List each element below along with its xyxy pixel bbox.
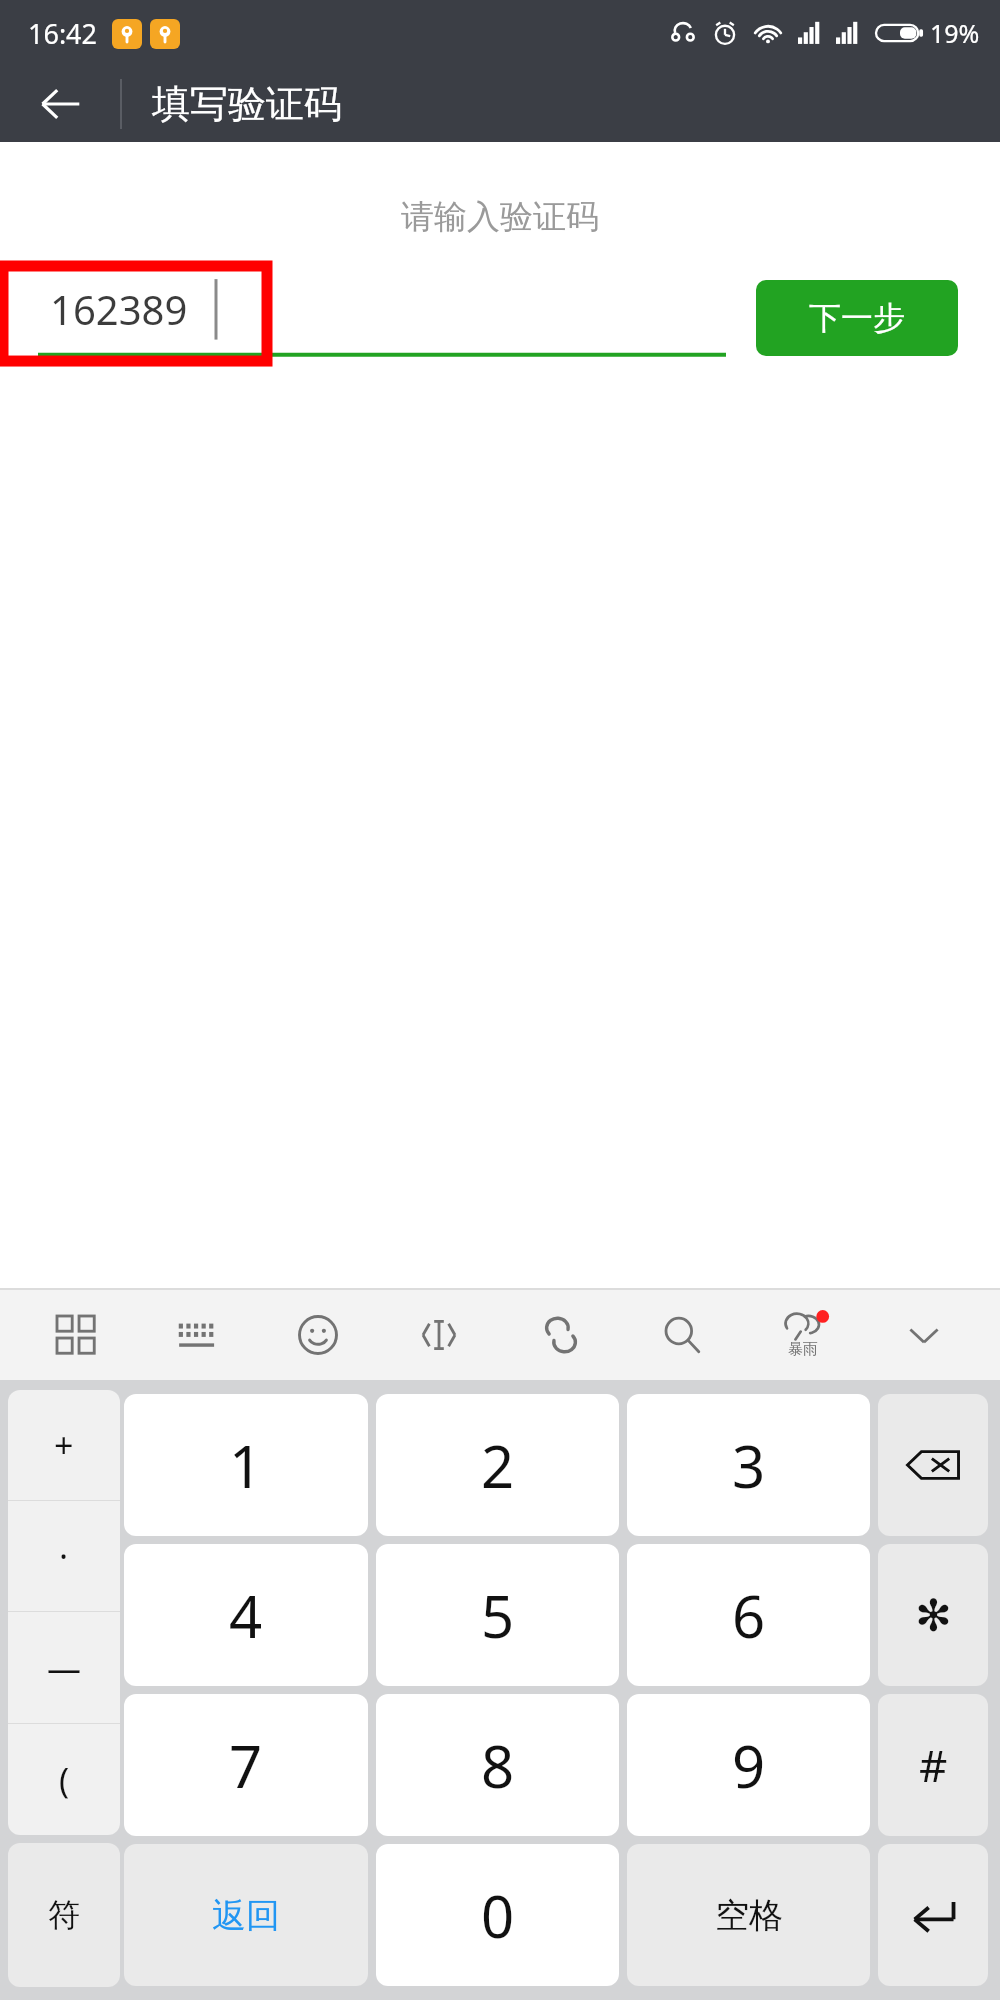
staticText: + [54,1422,74,1468]
staticText: 19% [930,16,980,50]
button[interactable]: Clipboard [516,1290,606,1380]
button[interactable]: Emoji [273,1290,363,1380]
button[interactable]: Hide keyboard [879,1290,969,1380]
button[interactable]: Backspace [878,1394,988,1536]
button[interactable]: Keyboard layout [152,1290,242,1380]
button[interactable]: 空格 [627,1844,870,1986]
button[interactable]: 下一步 [756,280,958,356]
staticText: 7 [229,1726,263,1805]
staticText: ( [59,1757,70,1803]
staticText: 1 [229,1426,263,1505]
staticText: 请输入验证码 [401,196,599,238]
staticText: 3 [732,1426,766,1505]
button[interactable]: 3 [627,1394,870,1536]
staticText: 暴雨 [788,1340,818,1359]
button[interactable]: Weather [758,1290,848,1380]
button[interactable]: 4 [124,1544,368,1686]
staticText: 下一步 [809,298,905,338]
button[interactable]: — [8,1612,120,1723]
button[interactable]: Asterisk [878,1544,988,1686]
button[interactable]: 162389 [0,264,740,372]
staticText: 16:42 [28,15,98,52]
staticText: 4 [229,1576,263,1655]
button[interactable]: 8 [376,1694,619,1836]
button[interactable]: 6 [627,1544,870,1686]
staticText: # [919,1735,948,1795]
staticText: 返回 [212,1894,280,1937]
staticText: 0 [481,1876,515,1955]
staticText: 5 [481,1576,515,1655]
button[interactable]: 返回 [124,1844,368,1986]
button[interactable]: Back [0,66,120,142]
button[interactable]: 7 [124,1694,368,1836]
staticText: 符 [48,1895,80,1935]
button[interactable]: Hash [878,1694,988,1836]
button[interactable]: Toolbox [31,1290,121,1380]
button[interactable]: 5 [376,1544,619,1686]
staticText: 9 [732,1726,766,1805]
button[interactable]: 0 [376,1844,619,1986]
button[interactable]: ( [8,1724,120,1835]
staticText: 162389 [50,282,188,336]
button[interactable]: 9 [627,1694,870,1836]
staticText: 空格 [715,1894,783,1937]
button[interactable]: Move cursor [394,1290,484,1380]
button[interactable]: 1 [124,1394,368,1536]
staticText: ✻ [915,1590,952,1641]
button[interactable]: 符 [8,1843,120,1987]
button[interactable]: · [8,1501,120,1611]
button[interactable]: Enter [878,1844,988,1986]
staticText: 8 [481,1726,515,1805]
staticText: 填写验证码 [152,80,342,128]
staticText: · [59,1533,69,1579]
button[interactable]: Search [637,1290,727,1380]
staticText: 2 [481,1426,515,1505]
staticText: 6 [732,1576,766,1655]
button[interactable]: 2 [376,1394,619,1536]
button[interactable]: + [8,1390,120,1500]
staticText: — [47,1645,81,1691]
